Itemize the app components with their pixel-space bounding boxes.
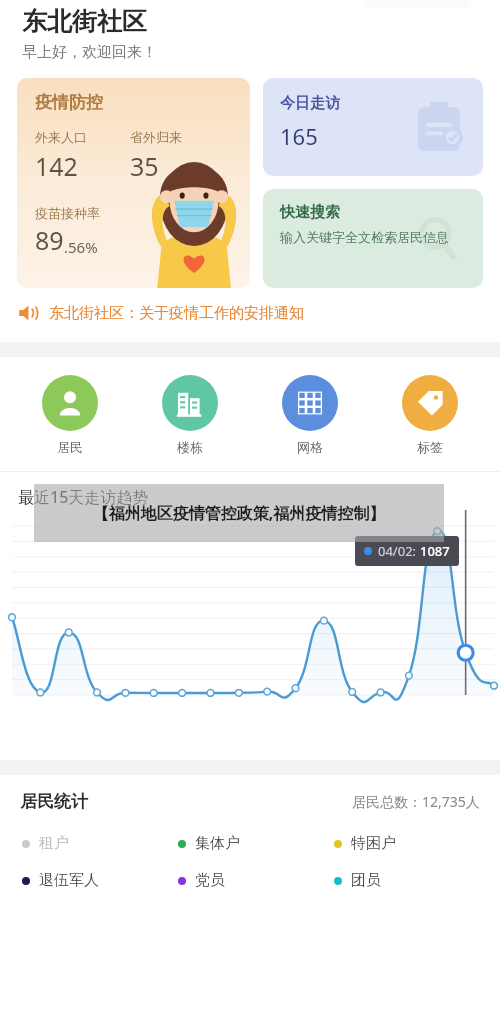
staticText: 东北街社区：关于疫情工作的安排通知 [49, 304, 304, 323]
button[interactable]: 今日走访 [263, 78, 483, 176]
staticText: 35 [130, 149, 159, 183]
staticText: 居民 [57, 439, 83, 455]
staticText: 今日走访 [280, 94, 340, 113]
staticText: 省外归来 [130, 129, 182, 145]
button[interactable]: 楼栋 [140, 375, 240, 455]
staticText: 1087 [420, 542, 450, 560]
button[interactable]: 公告 [17, 302, 483, 324]
button[interactable]: 租户 [22, 834, 178, 853]
button[interactable]: 标签 [380, 375, 480, 455]
staticText: 居民统计 [20, 791, 88, 812]
staticText: 142 [35, 149, 78, 183]
staticText: 输入关键字全文检索居民信息 [280, 229, 449, 245]
staticText: 东北街社区 [22, 6, 147, 37]
staticText: 集体户 [195, 834, 240, 853]
staticText: 网格 [297, 439, 323, 455]
staticText: 04/02: [378, 542, 420, 560]
staticText: 最近15天走访趋势 [18, 486, 149, 508]
staticText: 楼栋 [177, 439, 203, 455]
button[interactable]: 居民 [20, 375, 120, 455]
staticText: 团员 [351, 871, 381, 890]
staticText: 早上好，欢迎回来！ [22, 43, 157, 62]
button[interactable]: 退伍军人 [22, 871, 178, 890]
staticText: 【福州地区疫情管控政策,福州疫情控制】 [40, 502, 438, 524]
staticText: 标签 [417, 439, 443, 455]
staticText: 快速搜索 [280, 203, 340, 222]
button[interactable]: 疫情防控 [17, 78, 250, 288]
staticText: 疫苗接种率 [35, 205, 100, 221]
button[interactable]: 特困户 [334, 834, 490, 853]
button[interactable]: 网格 [260, 375, 360, 455]
button[interactable]: 党员 [178, 871, 334, 890]
staticText: 居民总数：12,735人 [352, 792, 480, 811]
button[interactable]: 集体户 [178, 834, 334, 853]
staticText: 165 [280, 121, 318, 151]
staticText: 疫情防控 [35, 92, 103, 113]
staticText: 租户 [39, 834, 69, 853]
staticText: .56% [64, 237, 98, 257]
staticText: 退伍军人 [39, 871, 99, 890]
staticText: 89 [35, 223, 64, 257]
button[interactable]: 团员 [334, 871, 490, 890]
staticText: 党员 [195, 871, 225, 890]
staticText: 外来人口 [35, 129, 87, 145]
button[interactable]: 快速搜索 [263, 189, 483, 288]
staticText: 特困户 [351, 834, 396, 853]
other: 公告 [17, 302, 39, 324]
